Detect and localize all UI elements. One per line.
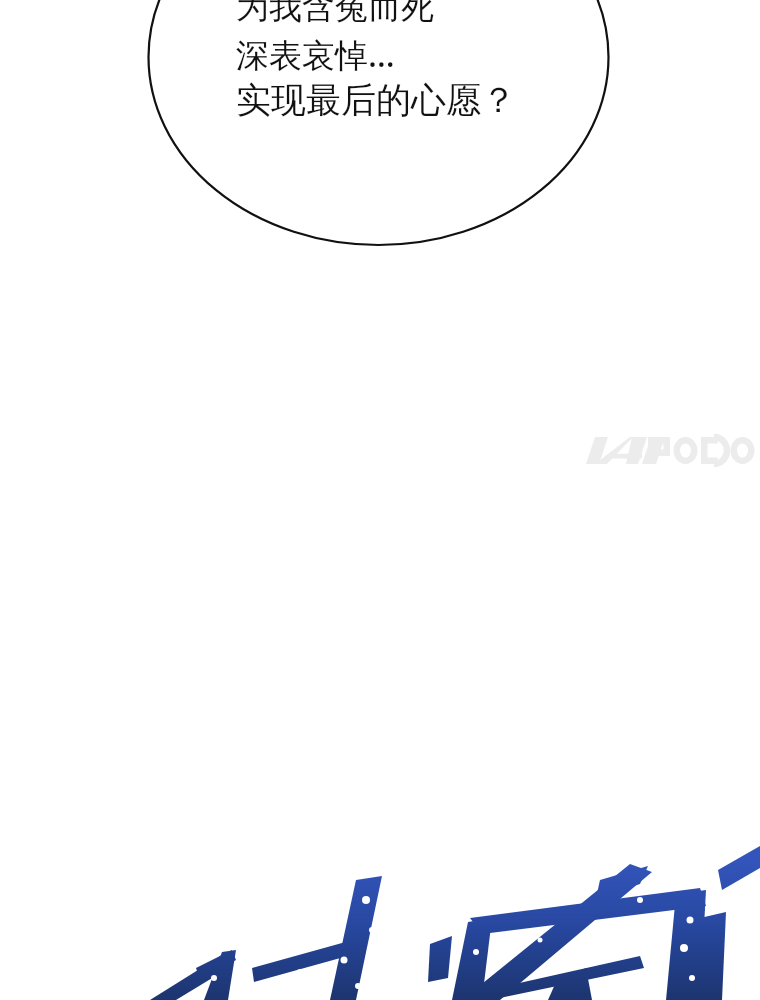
staticText: 实现最后的心愿？ bbox=[236, 78, 516, 122]
staticText: 深表哀悼… bbox=[236, 32, 395, 77]
staticText: 为我含冤而死 bbox=[236, 0, 434, 28]
